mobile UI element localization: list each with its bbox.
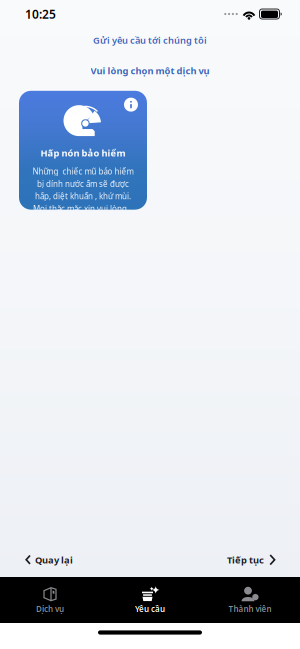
staticText: Mọi thắc mắc xin vui lòng... bbox=[33, 203, 133, 214]
button[interactable]: Thành viên bbox=[200, 581, 300, 619]
button[interactable]: Dịch vụ bbox=[0, 581, 100, 619]
button[interactable]: Tiếp tục bbox=[222, 547, 281, 573]
button[interactable]: Hấp nón bảo hiểm bbox=[19, 91, 147, 212]
staticText: Hấp nón bảo hiểm bbox=[40, 147, 125, 159]
staticText: 10:25 bbox=[25, 6, 56, 22]
staticText: Gửi yêu cầu tới chúng tôi bbox=[93, 34, 207, 46]
staticText: Dịch vụ bbox=[36, 604, 64, 614]
staticText: Những chiếc mũ bảo hiểm bbox=[32, 166, 133, 177]
staticText: hấp, diệt khuẩn , khử mùi. bbox=[35, 191, 131, 201]
button[interactable]: Quay lại bbox=[20, 547, 78, 573]
staticText: Yêu cầu bbox=[135, 604, 165, 614]
staticText: Tiếp tục bbox=[227, 554, 264, 566]
staticText: Thành viên bbox=[228, 604, 271, 614]
staticText: bị dính nước ẩm sẽ được bbox=[37, 178, 129, 189]
staticText: Vui lòng chọn một dịch vụ bbox=[90, 64, 209, 77]
button[interactable]: Yêu cầu bbox=[100, 581, 200, 619]
staticText: Quay lại bbox=[35, 554, 73, 566]
